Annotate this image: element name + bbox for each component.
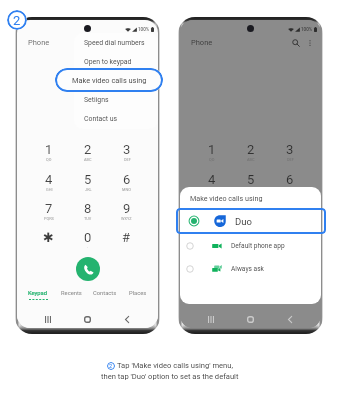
staticText: 9 — [123, 201, 131, 216]
button[interactable]: 0 — [68, 230, 107, 254]
button[interactable]: Search — [290, 37, 301, 48]
button[interactable]: 6 — [107, 172, 146, 196]
button[interactable]: Home — [67, 311, 107, 328]
button[interactable]: More options — [304, 37, 315, 48]
staticText: 2 — [13, 13, 21, 28]
button[interactable]: Back — [270, 311, 310, 328]
button[interactable]: Always ask — [180, 257, 321, 280]
staticText: 100% — [138, 27, 150, 32]
staticText: 2 — [109, 363, 113, 369]
button[interactable]: Speed dial numbers — [74, 33, 158, 52]
staticText: TUV — [247, 216, 255, 221]
staticText: # — [122, 230, 131, 245]
button[interactable]: 5 — [68, 172, 107, 196]
button[interactable]: 7 — [192, 201, 231, 225]
button[interactable]: Make video calls using — [55, 68, 163, 92]
button[interactable]: Open to keypad — [74, 52, 158, 71]
button[interactable]: Duo — [180, 208, 321, 234]
staticText: 4 — [208, 172, 216, 187]
staticText: Contacts — [93, 290, 117, 297]
staticText: 0 — [84, 230, 92, 245]
staticText: Make video calls using — [190, 194, 263, 202]
staticText: ✱ — [43, 230, 54, 245]
staticText: 1 — [208, 142, 216, 157]
staticText: 5 — [84, 172, 92, 187]
button[interactable]: Default phone app — [180, 234, 321, 257]
staticText: 8 — [247, 201, 255, 216]
button[interactable]: Recents — [191, 311, 230, 328]
button[interactable]: 3 — [107, 142, 146, 166]
button[interactable]: Setiigns — [74, 90, 158, 109]
staticText: QO — [209, 157, 215, 162]
staticText: 6 — [123, 172, 131, 187]
button[interactable]: Recents — [28, 311, 67, 328]
button[interactable]: Keypad — [21, 290, 55, 306]
button[interactable]: 9 — [107, 201, 146, 225]
staticText: 0 — [247, 230, 255, 245]
staticText: DEF — [287, 157, 294, 162]
staticText: Contact us — [84, 115, 118, 123]
staticText: Setiigns — [84, 96, 109, 104]
button[interactable]: 9 — [270, 201, 309, 225]
staticText: Places — [129, 290, 147, 297]
button[interactable]: Back — [107, 311, 147, 328]
staticText: Phone — [191, 38, 213, 47]
button[interactable]: 4 — [192, 172, 231, 196]
button[interactable]: Home — [230, 311, 270, 328]
staticText: 1 — [45, 142, 53, 157]
staticText: MNO — [122, 187, 131, 192]
button[interactable]: 3 — [270, 142, 309, 166]
staticText: WXYZ — [121, 216, 132, 221]
staticText: Phone — [28, 38, 50, 47]
button[interactable]: 8 — [68, 201, 107, 225]
button[interactable]: # — [107, 230, 146, 254]
button[interactable]: 7 — [29, 201, 68, 225]
staticText: # — [285, 230, 294, 245]
staticText: 3 — [123, 142, 131, 157]
staticText: PQRS — [44, 216, 54, 221]
staticText: DEF — [124, 157, 131, 162]
button[interactable] — [74, 71, 158, 90]
staticText: 4 — [45, 172, 53, 187]
button[interactable]: Call — [76, 257, 100, 281]
staticText: JKL — [85, 187, 92, 192]
staticText: 2 — [84, 142, 92, 157]
staticText: · — [87, 245, 89, 250]
button[interactable]: 1 — [192, 142, 231, 166]
staticText: 3 — [286, 142, 294, 157]
button[interactable]: 6 — [270, 172, 309, 196]
button[interactable]: Contacts — [88, 290, 121, 306]
button[interactable]: 8 — [231, 201, 270, 225]
staticText: then tap 'Duo' option to set as the defa… — [101, 372, 239, 381]
button[interactable]: 2 — [231, 142, 270, 166]
staticText: 8 — [84, 201, 92, 216]
staticText: Duo — [235, 216, 252, 227]
staticText: ABC — [84, 157, 92, 162]
staticText: 6 — [286, 172, 294, 187]
button[interactable]: 4 — [29, 172, 68, 196]
staticText: GHI — [46, 187, 53, 192]
button[interactable]: 1 — [29, 142, 68, 166]
staticText: 2 — [247, 142, 255, 157]
button[interactable]: 5 — [231, 172, 270, 196]
button[interactable]: Places — [121, 290, 154, 306]
button[interactable]: 0 — [231, 230, 270, 254]
button[interactable]: ✱ — [29, 230, 68, 254]
staticText: ABC — [247, 157, 255, 162]
button[interactable]: 2 — [68, 142, 107, 166]
button[interactable]: Contact us — [74, 109, 158, 128]
button[interactable]: ✱ — [192, 230, 231, 254]
staticText: 9 — [286, 201, 294, 216]
staticText: 100% — [301, 27, 313, 32]
staticText: · — [250, 245, 252, 250]
staticText: Make video calls using — [72, 76, 147, 85]
staticText: Always ask — [231, 265, 264, 273]
button[interactable]: Recents — [55, 290, 88, 306]
button[interactable]: # — [270, 230, 309, 254]
staticText: Open to keypad — [84, 58, 132, 66]
button[interactable] — [176, 208, 326, 234]
